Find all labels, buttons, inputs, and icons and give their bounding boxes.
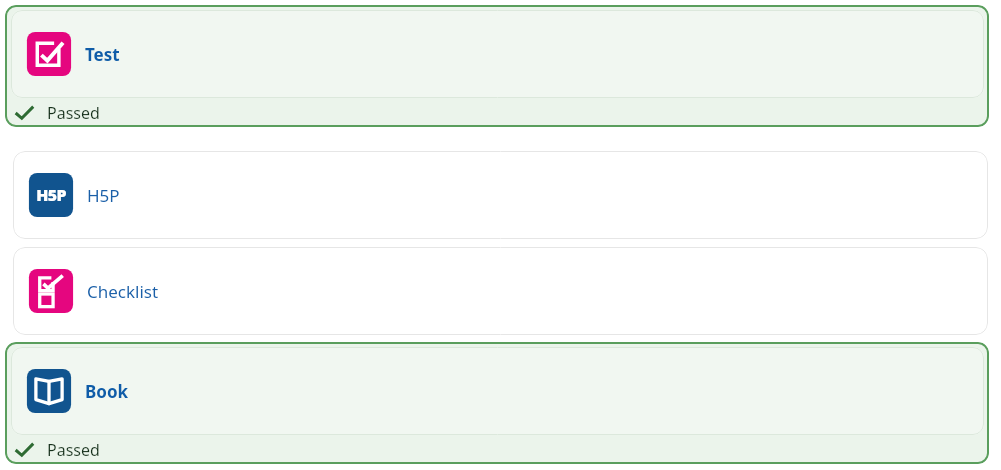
staticText: Book (85, 380, 129, 403)
staticText: Checklist (87, 280, 159, 303)
button[interactable]: Test (5, 5, 989, 127)
staticText: Passed (47, 102, 100, 124)
staticText: Passed (47, 439, 100, 461)
button[interactable]: Checklist (13, 247, 988, 335)
button[interactable]: Book (5, 342, 989, 464)
button[interactable]: H5P (13, 151, 988, 239)
staticText: H5P (36, 184, 66, 206)
staticText: Test (85, 43, 120, 66)
staticText: H5P (87, 184, 120, 207)
